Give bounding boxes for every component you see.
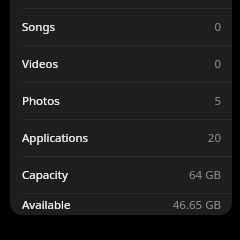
staticText: 64 GB xyxy=(189,167,221,183)
button[interactable]: Available xyxy=(10,194,232,215)
staticText: 20 xyxy=(207,130,221,146)
staticText: Available xyxy=(22,197,172,213)
staticText: Capacity xyxy=(22,167,189,183)
staticText: Songs xyxy=(22,19,214,35)
button[interactable]: Songs xyxy=(10,9,232,45)
staticText: 0 xyxy=(214,56,221,72)
button[interactable]: Applications xyxy=(10,120,232,156)
button[interactable]: Photos xyxy=(10,83,232,119)
button[interactable]: Capacity xyxy=(10,157,232,193)
staticText: 5 xyxy=(214,93,221,109)
button[interactable]: Videos xyxy=(10,46,232,82)
staticText: 46.65 GB xyxy=(172,197,221,213)
staticText: Applications xyxy=(22,130,207,146)
staticText: 0 xyxy=(214,19,221,35)
staticText: Videos xyxy=(22,56,214,72)
staticText: Photos xyxy=(22,93,214,109)
